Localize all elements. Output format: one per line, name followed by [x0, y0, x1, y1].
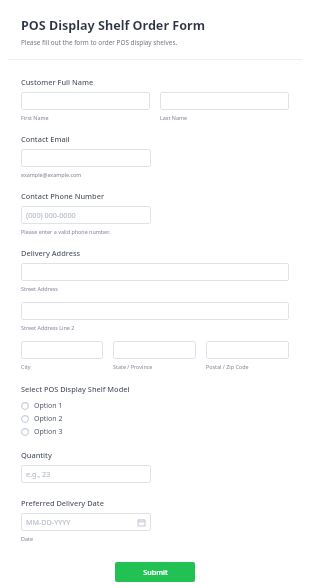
staticText: Contact Phone Number — [21, 191, 105, 201]
staticText: Delivery Address — [21, 248, 81, 258]
staticText: Select POS Display Shelf Model — [21, 384, 130, 394]
button[interactable]: Option 3 — [21, 425, 289, 438]
staticText: Street Address — [21, 285, 58, 292]
button[interactable]: Option 2 — [21, 412, 289, 425]
staticText: Postal / Zip Code — [206, 363, 249, 370]
button[interactable] — [21, 149, 151, 167]
staticText: e.g., 23 — [26, 469, 51, 479]
button[interactable] — [21, 302, 289, 320]
staticText: Submit — [143, 567, 168, 577]
staticText: Contact Email — [21, 134, 70, 144]
button[interactable] — [21, 92, 150, 110]
button[interactable]: Submit — [115, 562, 195, 582]
button[interactable]: Option 1 — [21, 399, 289, 412]
button[interactable]: e.g., 23 — [21, 465, 151, 483]
staticText: City — [21, 363, 31, 370]
button[interactable] — [21, 341, 103, 359]
staticText: Last Name — [160, 114, 187, 121]
button[interactable]: MM-DD-YYYY — [21, 513, 151, 531]
staticText: State / Province — [113, 363, 153, 370]
button[interactable]: Open calendar — [137, 518, 146, 527]
staticText: Preferred Delivery Date — [21, 498, 104, 508]
staticText: MM-DD-YYYY — [26, 517, 71, 527]
staticText: Option 1 — [34, 401, 63, 411]
staticText: Please enter a valid phone number. — [21, 228, 110, 235]
staticText: Please fill out the form to order POS di… — [21, 38, 178, 47]
staticText: example@example.com — [21, 171, 82, 178]
staticText: (000) 000-0000 — [26, 210, 76, 220]
button[interactable]: (000) 000-0000 — [21, 206, 151, 224]
staticText: POS Display Shelf Order Form — [21, 17, 205, 34]
staticText: Quantity — [21, 450, 52, 460]
staticText: Date — [21, 535, 33, 542]
staticText: Option 2 — [34, 414, 63, 424]
button[interactable] — [206, 341, 289, 359]
staticText: Street Address Line 2 — [21, 324, 75, 331]
staticText: Customer Full Name — [21, 77, 94, 87]
button[interactable] — [21, 263, 289, 281]
button[interactable] — [113, 341, 196, 359]
staticText: First Name — [21, 114, 49, 121]
staticText: Option 3 — [34, 427, 63, 437]
button[interactable] — [160, 92, 289, 110]
